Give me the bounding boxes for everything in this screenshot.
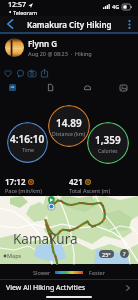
button[interactable]: Like (2, 67, 14, 79)
staticText: Calories (98, 147, 118, 154)
button[interactable]: 25° (102, 250, 111, 258)
button[interactable]: Photos (26, 67, 38, 79)
button[interactable]: View All Hiking Activities (0, 279, 138, 296)
button[interactable]: More options (120, 16, 138, 32)
staticText: Pace (min/km) (5, 187, 42, 194)
staticText: 25° (102, 251, 111, 258)
staticText: 17:12 (5, 176, 26, 187)
button[interactable]: Summary (9, 84, 16, 91)
staticText: Aug 20 @ 08:23 · Hiking (28, 50, 92, 57)
staticText: Telegram (13, 9, 38, 15)
button[interactable]: 17:12 (5, 176, 69, 194)
button[interactable]: Splits (46, 83, 55, 92)
staticText: 14.89 (56, 116, 82, 130)
staticText: 421 (69, 176, 83, 187)
button[interactable]: Map legend (120, 249, 129, 258)
staticText: 12:57 (8, 0, 26, 10)
button[interactable]: Time 4:16:10 (7, 122, 48, 163)
staticText: Distance (km) (52, 130, 86, 137)
staticText: 4G (112, 3, 120, 10)
staticText: Kamakura (13, 230, 78, 248)
staticText: Total Ascent (m) (69, 187, 111, 194)
staticText: 1,359 (95, 133, 121, 147)
staticText: Kamakura City Hiking (27, 19, 112, 30)
staticText: Flynn G (28, 38, 58, 49)
staticText: 4:16:10 (10, 132, 45, 146)
button[interactable]: Calories 1,359 (87, 122, 129, 164)
staticText: ? (123, 250, 126, 257)
staticText: Slower (33, 269, 51, 276)
staticText: Time (22, 146, 34, 153)
button[interactable]: 421 (69, 176, 133, 194)
button[interactable]: Distance (km) 14.89 (48, 105, 90, 147)
button[interactable]: Share (38, 67, 50, 79)
staticText: Faster (89, 269, 105, 276)
button[interactable]: Route (83, 83, 92, 92)
button[interactable]: Photos (119, 83, 128, 92)
button[interactable]: Flynn G profile photo (5, 38, 24, 57)
staticText: View All Hiking Activities (6, 283, 86, 293)
button[interactable]: Back (0, 16, 20, 32)
button[interactable]: Route map (0, 196, 138, 264)
button[interactable]: Comment (14, 67, 26, 79)
staticText: Maps (7, 252, 22, 259)
